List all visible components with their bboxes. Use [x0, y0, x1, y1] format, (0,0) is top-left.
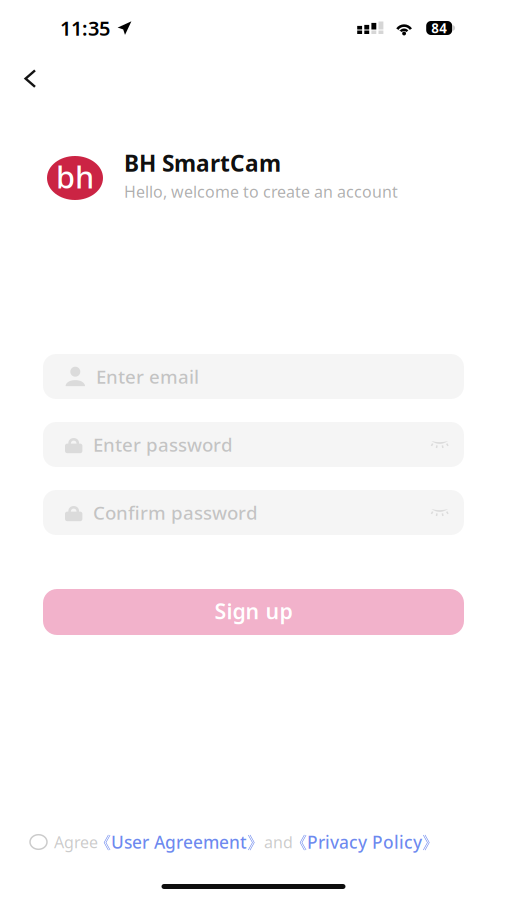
staticText: 84 — [431, 19, 447, 37]
staticText: 《User Agreement》 — [94, 830, 264, 853]
button[interactable]: Sign up — [43, 589, 464, 635]
staticText: Confirm password — [93, 500, 258, 525]
button[interactable]: 《Privacy Policy》 — [297, 830, 446, 853]
staticText: Enter password — [93, 432, 233, 457]
button[interactable]: Confirm password — [43, 490, 464, 535]
button[interactable]: Back — [0, 58, 55, 99]
staticText: and — [264, 831, 293, 853]
staticText: Agree — [54, 831, 98, 853]
button[interactable]: 《User Agreement》 — [98, 830, 268, 853]
button[interactable]: Agree — [30, 831, 98, 853]
staticText: Hello, welcome to create an account — [124, 181, 398, 202]
button[interactable]: Enter password — [43, 422, 464, 467]
staticText: BH SmartCam — [124, 148, 281, 178]
staticText: bh — [56, 156, 94, 197]
staticText: Enter email — [96, 364, 199, 389]
button[interactable]: Enter email — [43, 354, 464, 399]
staticText: 《Privacy Policy》 — [290, 830, 439, 853]
staticText: Sign up — [214, 597, 292, 625]
staticText: 11:35 — [60, 15, 110, 41]
